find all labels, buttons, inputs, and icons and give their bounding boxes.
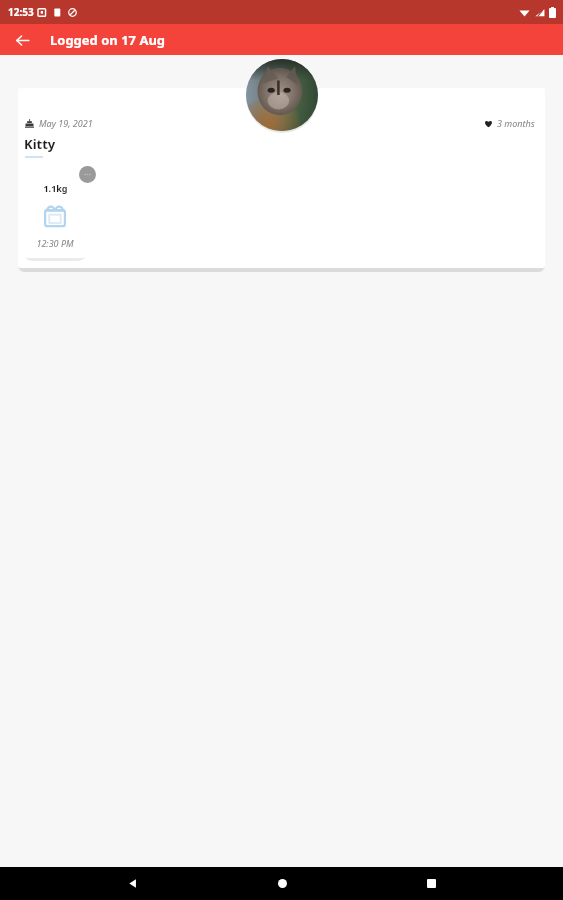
button[interactable]: 1.1kg <box>22 172 88 258</box>
staticText: 3 months <box>497 117 535 129</box>
button[interactable]: Back <box>116 867 150 900</box>
staticText: 1.1kg <box>43 182 68 194</box>
button[interactable]: More options <box>79 166 96 183</box>
staticText: Logged on 17 Aug <box>50 31 166 49</box>
button[interactable]: Recent apps <box>414 867 448 900</box>
button[interactable]: Back <box>8 26 36 54</box>
staticText: Kitty <box>24 135 56 153</box>
button[interactable]: Pet photo <box>246 59 318 131</box>
button[interactable]: May 19, 2021 <box>18 88 545 268</box>
staticText: 12:53 <box>8 5 34 19</box>
button[interactable]: Home <box>265 867 299 900</box>
staticText: 12:30 PM <box>36 237 74 249</box>
staticText: May 19, 2021 <box>39 117 93 129</box>
